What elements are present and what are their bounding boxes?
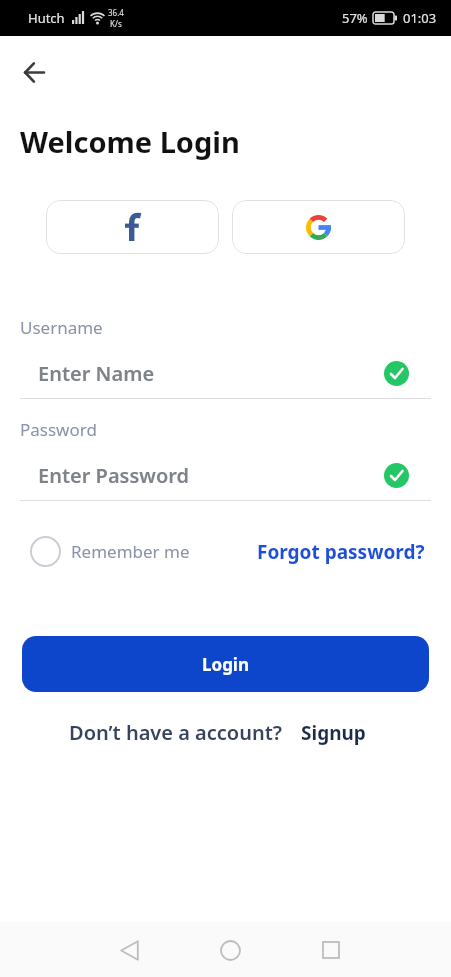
staticText: 57% [342,9,368,27]
button[interactable]: Remember me [30,536,190,567]
staticText: Don’t have a account? [69,719,283,746]
staticText: Login [202,653,250,676]
staticText: Enter Password [38,462,190,489]
staticText: K/s [110,18,122,29]
button[interactable]: Login [22,636,429,692]
button[interactable] [46,200,219,254]
staticText: Welcome Login [20,122,240,161]
button[interactable] [306,925,356,975]
staticText: 01:03 [403,9,437,27]
button[interactable]: Signup [301,720,366,746]
button[interactable] [205,925,255,975]
button[interactable]: Forgot password? [257,539,425,565]
staticText: Enter Name [38,360,155,387]
button[interactable] [232,200,405,254]
staticText: Password [20,418,97,441]
button[interactable] [104,925,154,975]
staticText: Hutch [28,9,65,27]
staticText: Remember me [71,540,190,563]
button[interactable] [24,62,45,83]
staticText: Username [20,316,103,339]
staticText: 36.4 [108,7,124,18]
